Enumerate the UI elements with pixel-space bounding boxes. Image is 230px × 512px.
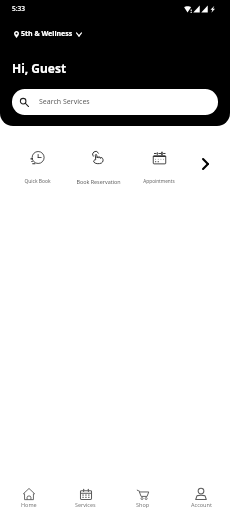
button[interactable]: Quick Book [9,148,65,188]
staticText: Search Services [39,97,90,107]
staticText: Hi, Guest [12,60,67,76]
button[interactable]: Account [172,480,230,508]
button[interactable]: More quick actions [194,153,216,175]
button[interactable]: Search Services [12,89,218,115]
staticText: 5:33 [12,4,25,13]
button[interactable]: Appointments [131,148,187,188]
staticText: Appointments [143,178,175,184]
staticText: Book Reservation [76,178,121,185]
staticText: Quick Book [24,178,51,185]
staticText: Services [75,501,96,508]
staticText: Shop [136,501,150,508]
button[interactable]: Shop [114,480,172,508]
button[interactable]: Services [57,480,114,508]
staticText: Home [21,501,37,508]
staticText: 5th & Wellness [21,29,73,39]
button[interactable]: Home [0,480,57,508]
button[interactable]: Book Reservation [70,148,126,188]
button[interactable]: 5th & Wellness [14,29,82,39]
staticText: Account [191,501,212,508]
